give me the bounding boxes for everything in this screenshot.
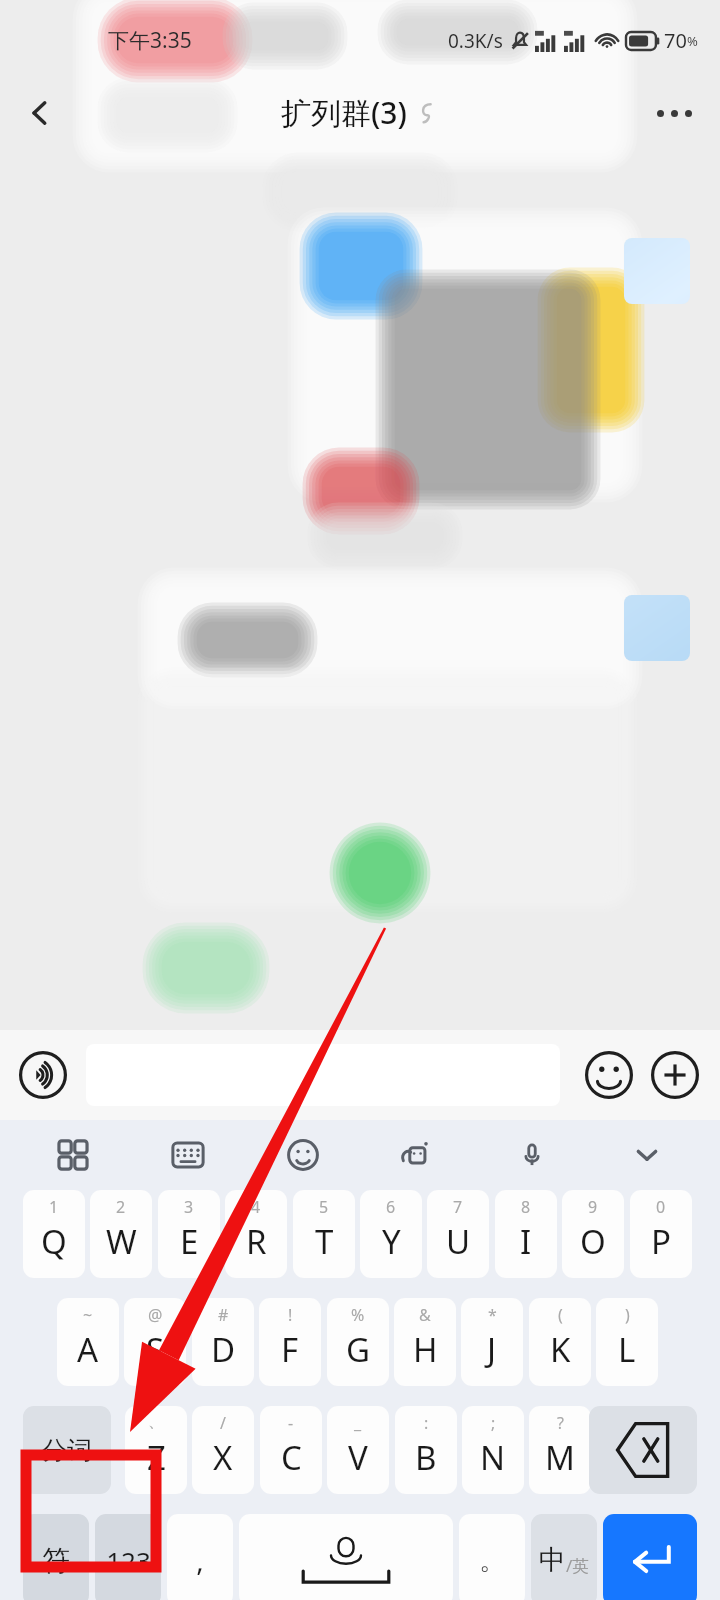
button[interactable]: Space (239, 1514, 453, 1600)
staticText: V (348, 1435, 368, 1480)
button[interactable]: 1 (23, 1190, 85, 1278)
button[interactable]: More options (642, 81, 706, 145)
button[interactable]: 符 (23, 1514, 89, 1600)
staticText: 123 (106, 1543, 151, 1578)
staticText: _ (354, 1412, 362, 1434)
button[interactable]: Emoji (274, 1126, 332, 1184)
button[interactable]: 3 (158, 1190, 220, 1278)
button[interactable] (86, 1044, 560, 1106)
staticText: 7 (453, 1196, 463, 1218)
staticText: # (218, 1304, 229, 1326)
button[interactable]: 8 (495, 1190, 557, 1278)
staticText: I (520, 1219, 532, 1264)
staticText: 1 (49, 1196, 59, 1218)
button[interactable]: Enter (603, 1514, 697, 1600)
button[interactable]: & (394, 1298, 456, 1386)
button[interactable]: _ (327, 1406, 389, 1494)
staticText: P (651, 1219, 671, 1264)
staticText: A (77, 1327, 99, 1372)
staticText: : (424, 1412, 429, 1434)
button[interactable]: 123 (95, 1514, 161, 1600)
button[interactable]: ? (529, 1406, 591, 1494)
staticText: L (618, 1327, 636, 1372)
button[interactable]: - (260, 1406, 322, 1494)
staticText: /英 (566, 1554, 590, 1577)
staticText: 2 (116, 1196, 126, 1218)
button[interactable]: ; (462, 1406, 524, 1494)
staticText: ; (491, 1412, 496, 1434)
staticText: 中 (539, 1543, 566, 1577)
staticText: M (545, 1435, 575, 1480)
button[interactable]: 4 (225, 1190, 287, 1278)
staticText: C (281, 1435, 302, 1480)
staticText: B (415, 1435, 437, 1480)
staticText: ! (288, 1304, 293, 1326)
button[interactable]: , (167, 1514, 233, 1600)
button[interactable]: Backspace (589, 1406, 697, 1494)
button[interactable]: 6 (360, 1190, 422, 1278)
button[interactable]: 5 (293, 1190, 355, 1278)
button[interactable]: : (395, 1406, 457, 1494)
button[interactable]: ~ (57, 1298, 119, 1386)
button[interactable]: Theme (388, 1126, 446, 1184)
staticText: 6 (386, 1196, 396, 1218)
staticText: U (446, 1219, 471, 1264)
staticText: % (687, 32, 698, 50)
staticText: 70 (664, 27, 687, 54)
button[interactable]: ( (529, 1298, 591, 1386)
staticText: 8 (521, 1196, 531, 1218)
staticText: W (106, 1219, 137, 1264)
staticText: 符 (42, 1543, 70, 1578)
staticText: Z (147, 1435, 166, 1480)
staticText: H (413, 1327, 438, 1372)
staticText: F (281, 1327, 299, 1372)
staticText: ? (557, 1412, 564, 1434)
staticText: 分词 (42, 1435, 92, 1466)
button[interactable]: 7 (427, 1190, 489, 1278)
button[interactable]: Keyboard layouts (44, 1126, 102, 1184)
staticText: 3 (184, 1196, 194, 1218)
staticText: R (246, 1219, 267, 1264)
staticText: 、 (148, 1412, 164, 1432)
staticText: ) (625, 1304, 630, 1326)
staticText: X (213, 1435, 233, 1480)
staticText: ~ (83, 1304, 93, 1326)
button[interactable]: ! (259, 1298, 321, 1386)
button[interactable]: 、 (125, 1406, 187, 1494)
button[interactable]: ) (596, 1298, 658, 1386)
button[interactable]: Keyboard settings (159, 1126, 217, 1184)
button[interactable]: / (192, 1406, 254, 1494)
staticText: N (480, 1435, 506, 1480)
staticText: / (220, 1412, 226, 1434)
staticText: T (315, 1219, 334, 1264)
button[interactable]: Voice input (12, 1044, 74, 1106)
button[interactable]: 分词 (23, 1406, 111, 1494)
button[interactable]: % (327, 1298, 389, 1386)
button[interactable]: Emoji (578, 1044, 640, 1106)
staticText: 。 (479, 1544, 505, 1577)
button[interactable]: Back (10, 83, 70, 143)
button[interactable]: Voice (503, 1126, 561, 1184)
button[interactable]: # (192, 1298, 254, 1386)
staticText: 0 (656, 1196, 666, 1218)
button[interactable]: 中 (531, 1514, 597, 1600)
button[interactable]: * (461, 1298, 523, 1386)
staticText: 下午3:35 (108, 26, 192, 55)
button[interactable]: 0 (630, 1190, 692, 1278)
staticText: * (488, 1304, 497, 1326)
staticText: @ (148, 1304, 163, 1326)
staticText: G (346, 1327, 371, 1372)
button[interactable]: More functions (644, 1044, 706, 1106)
button[interactable]: 9 (562, 1190, 624, 1278)
button[interactable]: @ (124, 1298, 186, 1386)
button[interactable]: Hide keyboard (618, 1126, 676, 1184)
staticText: & (419, 1304, 431, 1326)
staticText: - (288, 1412, 294, 1434)
button[interactable]: 2 (90, 1190, 152, 1278)
staticText: 扩列群(3) (281, 92, 407, 133)
staticText: ( (558, 1304, 563, 1326)
button[interactable]: 。 (459, 1514, 525, 1600)
staticText: O (580, 1219, 606, 1264)
staticText: 5 (319, 1196, 329, 1218)
staticText: D (211, 1327, 236, 1372)
